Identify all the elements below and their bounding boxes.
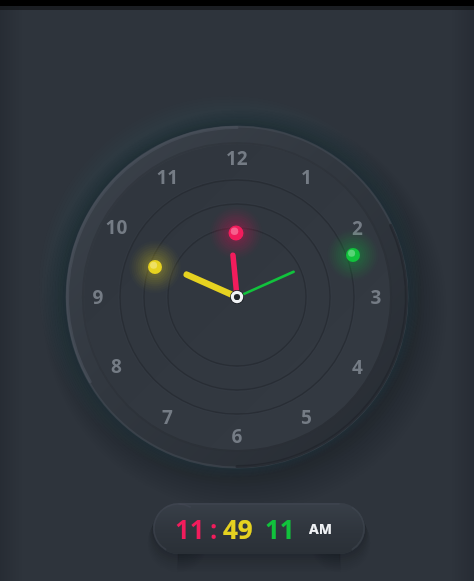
button[interactable]: Neumorphic analog watch face showing 11:… (0, 0, 474, 581)
